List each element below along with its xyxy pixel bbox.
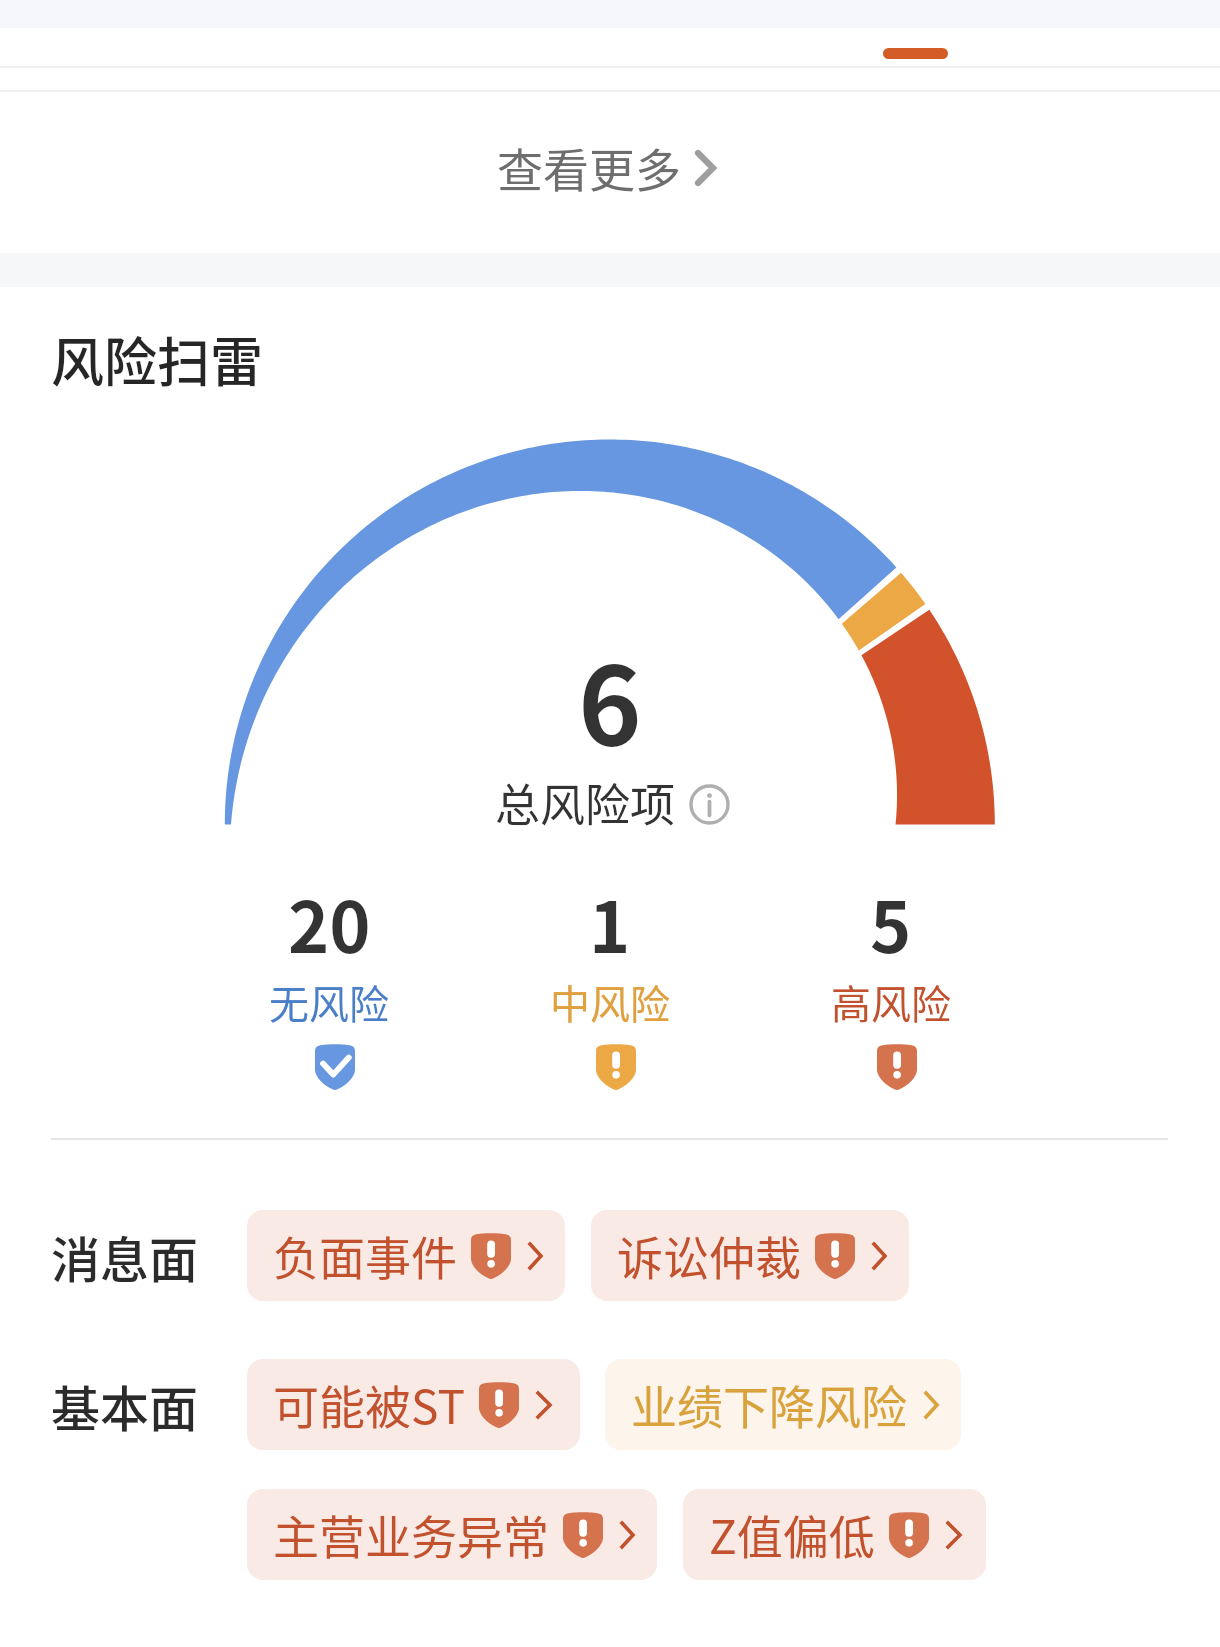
staticText: 基本面 — [51, 1370, 199, 1441]
staticText: 6 — [578, 620, 642, 776]
button[interactable]: 诉讼仲裁 — [591, 1210, 909, 1301]
staticText: 5 — [870, 872, 912, 973]
staticText: 业绩下降风险 — [631, 1371, 907, 1438]
button[interactable]: 20 — [189, 872, 469, 1102]
staticText: 1 — [589, 872, 631, 973]
staticText: 诉讼仲裁 — [617, 1222, 801, 1289]
button[interactable]: Z值偏低 — [683, 1489, 986, 1580]
staticText: 可能被ST — [273, 1371, 465, 1438]
button[interactable]: 可能被ST — [247, 1359, 580, 1450]
staticText: 无风险 — [269, 973, 389, 1031]
staticText: 高风险 — [831, 973, 951, 1031]
other: Info — [689, 784, 730, 825]
staticText: 风险扫雷 — [51, 321, 263, 398]
staticText: 查看更多 — [497, 134, 681, 201]
button[interactable]: 业绩下降风险 — [605, 1359, 961, 1450]
button[interactable]: 查看更多 — [0, 86, 1216, 248]
staticText: 主营业务异常 — [273, 1501, 549, 1568]
staticText: 中风险 — [550, 973, 670, 1031]
staticText: Z值偏低 — [709, 1501, 875, 1568]
button[interactable]: 1 — [470, 872, 750, 1102]
staticText: 20 — [288, 872, 371, 973]
button[interactable]: 主营业务异常 — [247, 1489, 657, 1580]
button[interactable]: Tab — [820, 28, 1010, 66]
staticText: 消息面 — [51, 1221, 199, 1292]
staticText: 负面事件 — [273, 1222, 457, 1289]
staticText: 总风险项 — [495, 770, 676, 835]
button[interactable]: 负面事件 — [247, 1210, 565, 1301]
button[interactable]: 5 — [751, 872, 1031, 1102]
